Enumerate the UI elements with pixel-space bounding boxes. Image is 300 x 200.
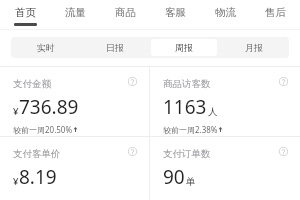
button[interactable]: 客服: [150, 0, 200, 30]
button[interactable]: 商品访客数: [150, 67, 300, 136]
staticText: 较前一周20.50%: [13, 124, 73, 135]
button[interactable]: 指标说明: [279, 147, 288, 156]
staticText: 售后: [265, 6, 286, 19]
button[interactable]: 指标说明: [128, 77, 137, 86]
staticText: 1163: [163, 94, 207, 120]
button[interactable]: 指标说明: [279, 77, 288, 86]
staticText: 8.19: [19, 164, 57, 190]
staticText: ¥: [13, 175, 19, 188]
staticText: 首页: [15, 6, 36, 19]
staticText: ¥: [13, 105, 19, 118]
staticText: 商品: [115, 6, 136, 19]
staticText: 流量: [65, 6, 86, 19]
staticText: 较前一周2.38%: [163, 124, 218, 135]
staticText: 实时: [37, 42, 55, 53]
staticText: 人: [208, 106, 218, 118]
staticText: 单: [186, 176, 196, 188]
button[interactable]: 支付客单价: [0, 137, 149, 200]
button[interactable]: 支付订单数: [150, 137, 300, 200]
staticText: 支付订单数: [163, 148, 211, 160]
button[interactable]: 首页: [0, 0, 50, 30]
staticText: 支付金额: [13, 78, 51, 90]
button[interactable]: 支付金额: [0, 67, 149, 136]
staticText: 日报: [106, 42, 124, 53]
button[interactable]: 周报: [151, 39, 217, 56]
staticText: 月报: [245, 42, 263, 53]
button[interactable]: 日报: [82, 39, 147, 56]
button[interactable]: 售后: [250, 0, 300, 30]
button[interactable]: 商品: [100, 0, 150, 30]
staticText: 90: [163, 164, 185, 190]
staticText: 客服: [165, 6, 186, 19]
staticText: 736.89: [19, 94, 79, 120]
staticText: 支付客单价: [13, 148, 61, 160]
button[interactable]: 流量: [50, 0, 100, 30]
button[interactable]: 实时: [13, 39, 78, 56]
staticText: 周报: [175, 42, 193, 53]
staticText: 物流: [215, 6, 236, 19]
button[interactable]: 月报: [221, 39, 287, 56]
button[interactable]: 指标说明: [128, 147, 137, 156]
button[interactable]: 物流: [200, 0, 250, 30]
staticText: 商品访客数: [163, 78, 211, 90]
